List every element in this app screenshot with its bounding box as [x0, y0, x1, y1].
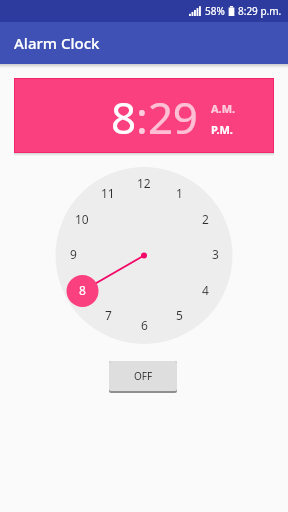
staticText: 4: [202, 282, 209, 298]
staticText: 6: [141, 317, 148, 333]
staticText: 7: [105, 307, 112, 323]
staticText: Alarm Clock: [14, 33, 100, 53]
staticText: 1: [176, 185, 183, 201]
staticText: P.M.: [211, 122, 233, 137]
staticText: 11: [101, 185, 115, 201]
staticText: 9: [70, 246, 77, 262]
staticText: :: [136, 87, 148, 147]
staticText: 8:29 p.m.: [238, 4, 282, 18]
staticText: 2: [202, 211, 209, 227]
staticText: 3: [212, 246, 219, 262]
staticText: 10: [75, 211, 89, 227]
staticText: A.M.: [211, 101, 236, 116]
staticText: 8: [79, 282, 86, 298]
staticText: OFF: [134, 369, 153, 383]
staticText: 5: [176, 307, 183, 323]
staticText: 12: [137, 175, 151, 191]
staticText: 58%: [205, 4, 225, 18]
staticText: 8: [111, 87, 136, 147]
staticText: 29: [148, 87, 198, 147]
